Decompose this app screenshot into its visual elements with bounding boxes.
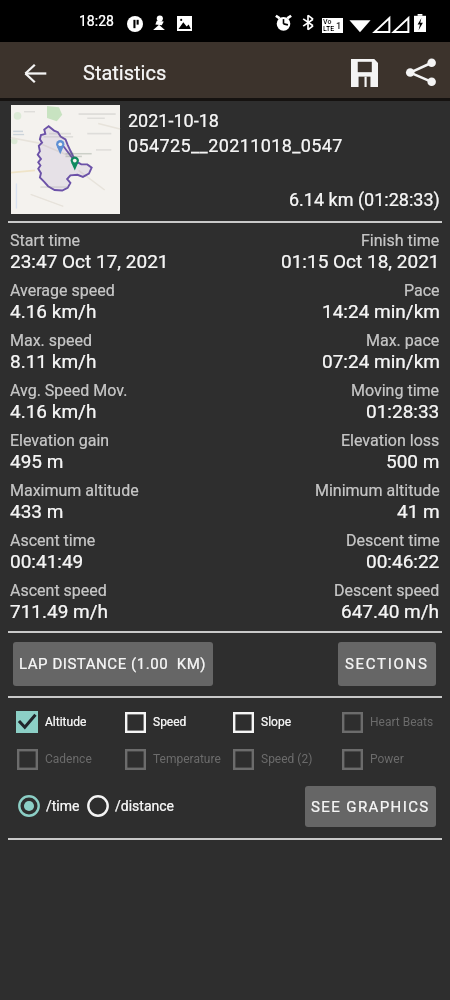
staticText: 647.40 m/h: [341, 600, 440, 622]
staticText: Altitude: [45, 715, 87, 729]
button[interactable]: SECTIONS: [338, 642, 436, 686]
staticText: Power: [370, 752, 404, 766]
staticText: Max. speed: [10, 331, 93, 350]
staticText: 00:46:22: [366, 550, 440, 572]
button[interactable]: /time: [18, 788, 80, 824]
staticText: 495 m: [10, 450, 64, 472]
staticText: LAP DISTANCE (1.00 KM): [19, 655, 207, 673]
staticText: 2021-10-18: [128, 110, 219, 131]
staticText: Max. pace: [366, 331, 440, 350]
staticText: Elevation loss: [341, 431, 440, 450]
staticText: SECTIONS: [345, 655, 429, 673]
staticText: 8.11 km/h: [10, 350, 97, 372]
staticText: Vo: [323, 18, 332, 26]
staticText: 01:15 Oct 18, 2021: [281, 250, 440, 272]
staticText: Heart Beats: [370, 715, 434, 729]
staticText: 23:47 Oct 17, 2021: [10, 250, 169, 272]
staticText: Start time: [10, 231, 81, 250]
staticText: Cadence: [45, 752, 92, 766]
staticText: 01:28:33: [366, 400, 440, 422]
staticText: 07:24 min/km: [322, 350, 440, 372]
staticText: Avg. Speed Mov.: [10, 381, 128, 400]
staticText: 1: [336, 21, 342, 32]
staticText: SEE GRAPHICS: [311, 798, 430, 816]
staticText: Minimum altitude: [315, 481, 440, 500]
staticText: Temperature: [153, 752, 221, 766]
staticText: Slope: [261, 715, 291, 729]
staticText: Elevation gain: [10, 431, 110, 450]
staticText: Average speed: [10, 281, 115, 300]
button[interactable]: Navigate up: [11, 49, 59, 97]
staticText: /time: [46, 798, 80, 814]
staticText: Descent speed: [334, 581, 440, 600]
staticText: 4.16 km/h: [10, 400, 97, 422]
staticText: 00:41:49: [10, 550, 84, 572]
staticText: 500 m: [386, 450, 440, 472]
staticText: 18:28: [79, 13, 114, 29]
button[interactable]: Altitude: [16, 703, 124, 740]
button[interactable]: Cadence: [16, 740, 124, 777]
staticText: 6.14 km (01:28:33): [289, 189, 440, 210]
button[interactable]: Speed: [124, 703, 232, 740]
button[interactable]: Power: [341, 740, 450, 777]
staticText: 14:24 min/km: [322, 300, 440, 322]
staticText: 711.49 m/h: [10, 600, 109, 622]
button[interactable]: Save: [340, 49, 388, 97]
button[interactable]: /distance: [87, 788, 174, 824]
staticText: Finish time: [361, 231, 440, 250]
staticText: Ascent speed: [10, 581, 107, 600]
button[interactable]: Heart Beats: [341, 703, 450, 740]
staticText: Descent time: [346, 531, 440, 550]
staticText: LTE: [323, 25, 335, 33]
staticText: 433 m: [10, 500, 64, 522]
button[interactable]: Share: [397, 48, 445, 96]
staticText: Moving time: [351, 381, 440, 400]
button[interactable]: Temperature: [124, 740, 232, 777]
staticText: Pace: [404, 281, 440, 300]
staticText: 054725__20211018_0547: [128, 135, 343, 156]
staticText: Ascent time: [10, 531, 96, 550]
staticText: 4.16 km/h: [10, 300, 97, 322]
staticText: 41 m: [397, 500, 440, 522]
button[interactable]: Speed (2): [232, 740, 341, 777]
staticText: Maximum altitude: [10, 481, 139, 500]
staticText: Speed: [153, 715, 187, 729]
button[interactable]: SEE GRAPHICS: [305, 786, 436, 827]
button[interactable]: LAP DISTANCE (1.00 KM): [13, 642, 213, 686]
staticText: Statistics: [83, 61, 167, 84]
staticText: Speed (2): [261, 752, 313, 766]
staticText: /distance: [115, 798, 174, 814]
button[interactable]: Slope: [232, 703, 341, 740]
